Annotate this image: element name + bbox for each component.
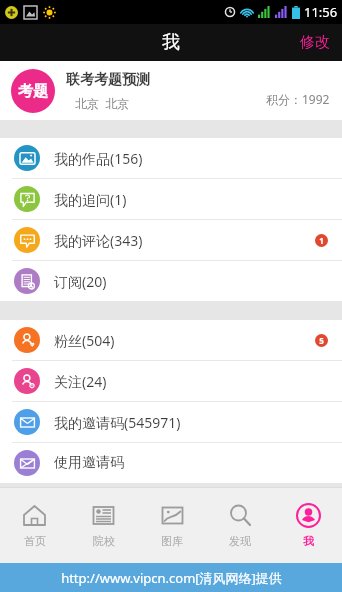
staticText: 1 xyxy=(319,235,324,246)
button[interactable]: 订阅(20) xyxy=(0,261,342,301)
staticText: 11:56 xyxy=(304,3,338,21)
button[interactable]: 我的追问(1) xyxy=(0,179,342,219)
staticText: 关注(24) xyxy=(54,372,328,391)
staticText: 考题 xyxy=(18,82,48,101)
staticText: 我 xyxy=(162,31,180,54)
staticText: 我 xyxy=(303,534,314,548)
staticText: 北京 北京 xyxy=(75,95,130,111)
staticText: 我的作品(156) xyxy=(54,149,328,168)
staticText: 使用邀请码 xyxy=(54,454,328,472)
button[interactable]: 我 xyxy=(274,488,342,563)
staticText: 图库 xyxy=(161,534,183,548)
staticText: http://www.vipcn.com[清风网络]提供 xyxy=(61,569,282,587)
button[interactable]: 考题 xyxy=(0,61,342,120)
button[interactable]: 首页 xyxy=(0,488,69,563)
staticText: 修改 xyxy=(300,33,330,52)
button[interactable]: 我的作品(156) xyxy=(0,138,342,178)
button[interactable]: 我的邀请码(545971) xyxy=(0,402,342,442)
staticText: 积分：1992 xyxy=(266,91,330,107)
button[interactable]: 粉丝(504) xyxy=(0,320,342,360)
staticText: 订阅(20) xyxy=(54,272,328,291)
staticText: 我的邀请码(545971) xyxy=(54,413,328,432)
button[interactable]: 院校 xyxy=(69,488,138,563)
staticText: 我的评论(343) xyxy=(54,231,315,250)
button[interactable]: 关注(24) xyxy=(0,361,342,401)
button[interactable]: 使用邀请码 xyxy=(0,443,342,483)
staticText: 联考考题预测 xyxy=(66,71,150,89)
staticText: 我的追问(1) xyxy=(54,190,328,209)
staticText: 院校 xyxy=(93,534,115,548)
button[interactable]: 图库 xyxy=(138,488,206,563)
staticText: 粉丝(504) xyxy=(54,331,315,350)
button[interactable]: 发现 xyxy=(206,488,274,563)
button[interactable]: 修改 xyxy=(288,27,342,58)
staticText: 发现 xyxy=(229,534,251,548)
staticText: 5 xyxy=(319,335,324,346)
staticText: 首页 xyxy=(24,534,46,548)
button[interactable]: 我的评论(343) xyxy=(0,220,342,260)
